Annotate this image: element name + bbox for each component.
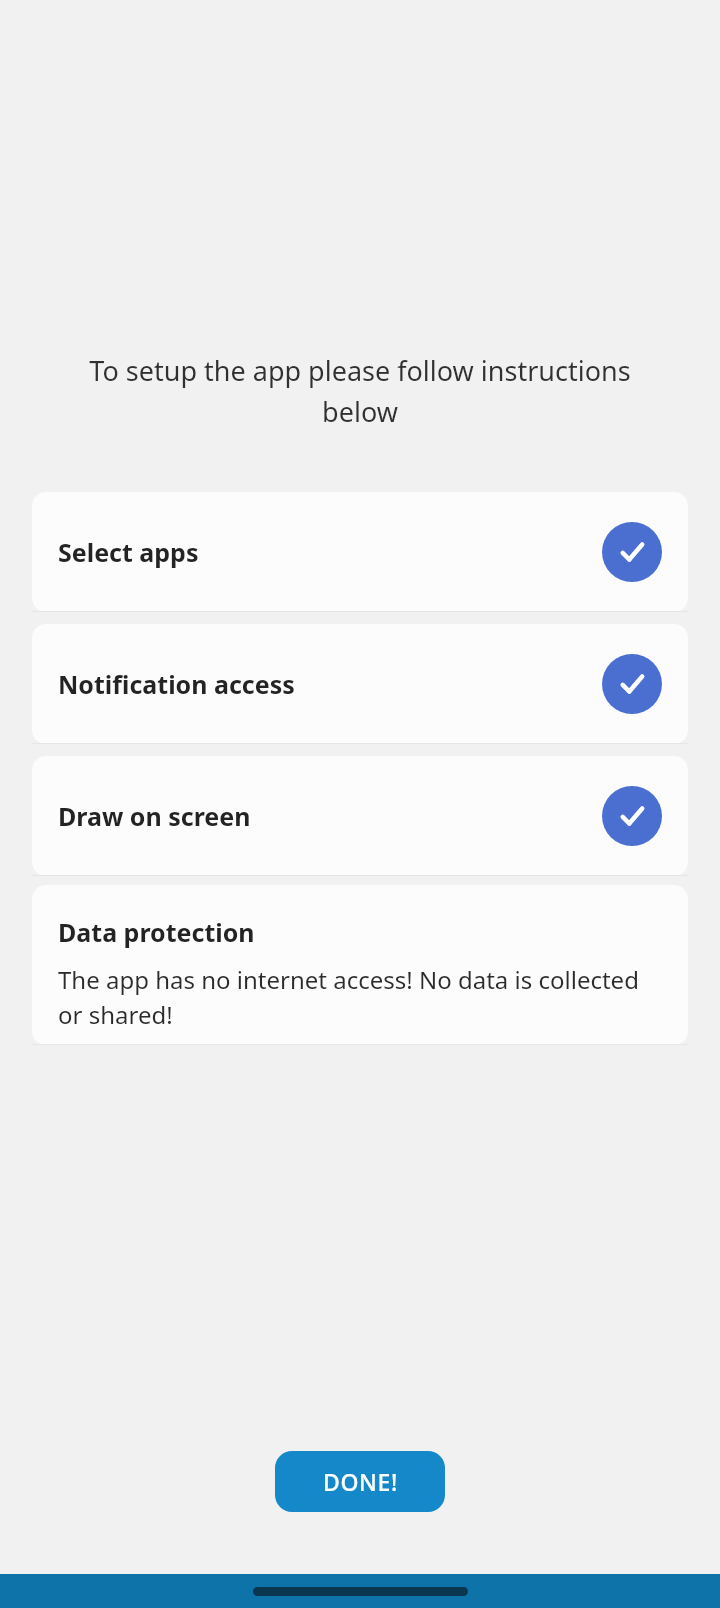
staticText: Data protection xyxy=(58,915,255,949)
other: Completed xyxy=(602,654,662,714)
other: Completed xyxy=(602,522,662,582)
staticText: Notification access xyxy=(58,667,295,701)
button[interactable]: Notification access xyxy=(32,624,688,744)
staticText: The app has no internet access! No data … xyxy=(58,963,666,1031)
staticText: Draw on screen xyxy=(58,799,251,833)
button[interactable]: Select apps xyxy=(32,492,688,612)
button[interactable]: DONE! xyxy=(275,1451,445,1512)
button[interactable]: Draw on screen xyxy=(32,756,688,876)
staticText: DONE! xyxy=(323,1466,398,1497)
staticText: To setup the app please follow instructi… xyxy=(56,352,664,430)
other: Completed xyxy=(602,786,662,846)
staticText: Select apps xyxy=(58,535,199,569)
button[interactable]: Data protection xyxy=(32,885,688,1045)
